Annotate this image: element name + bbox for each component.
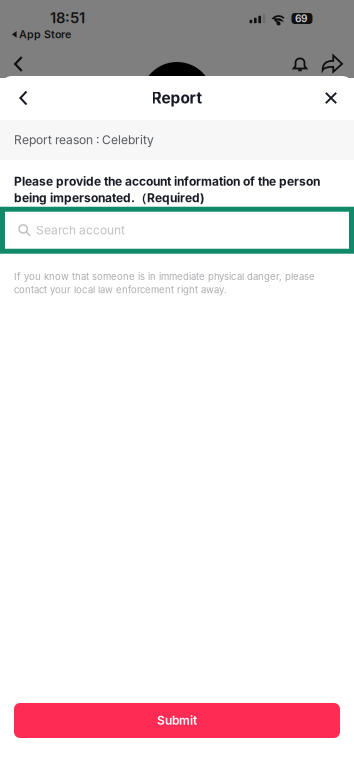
button[interactable]: Notifications (286, 51, 314, 77)
staticText: Submit (157, 713, 197, 728)
button[interactable]: Back (6, 76, 40, 120)
staticText: 69 (295, 12, 307, 25)
button[interactable]: Share (317, 50, 347, 76)
staticText: 18:51 (50, 9, 85, 27)
staticText: App Store (19, 28, 71, 41)
staticText: contact your local law enforcement right… (14, 284, 227, 296)
button[interactable]: Back (2, 51, 34, 77)
staticText: If you know that someone is in immediate… (14, 271, 315, 282)
staticText: being impersonated.（Required) (14, 190, 205, 206)
button[interactable]: Close (314, 76, 348, 120)
staticText: Search account (36, 223, 125, 237)
staticText: Report (151, 89, 202, 107)
staticText: Please provide the account information o… (14, 174, 320, 188)
staticText: Report reason : Celebrity (14, 133, 154, 147)
button[interactable]: Submit (14, 703, 340, 738)
